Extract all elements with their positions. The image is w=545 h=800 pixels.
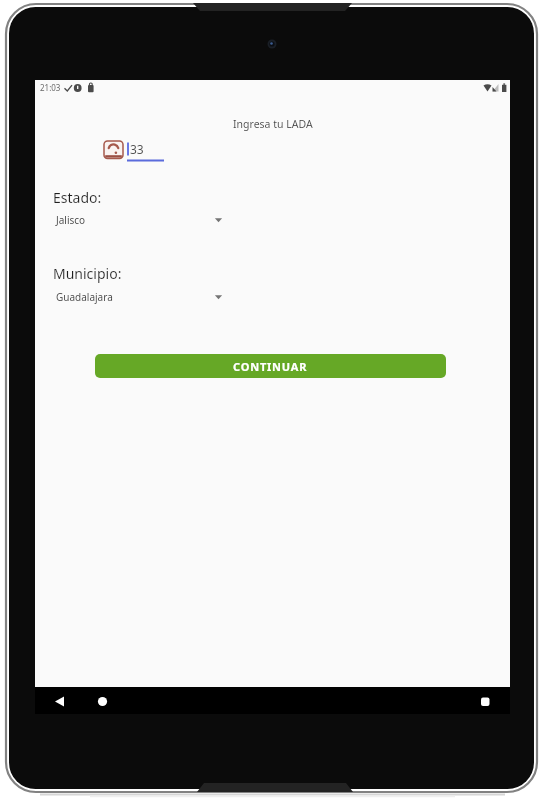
button[interactable]: [90, 692, 116, 710]
staticText: 21:03: [40, 82, 61, 93]
staticText: Jalisco: [56, 213, 86, 227]
staticText: Estado:: [53, 188, 102, 207]
staticText: Municipio:: [53, 264, 122, 283]
staticText: Guadalajara: [56, 290, 113, 304]
button[interactable]: [47, 692, 73, 710]
button[interactable]: [49, 285, 234, 305]
staticText: 33: [130, 141, 144, 157]
button[interactable]: CONTINUAR: [95, 354, 446, 378]
staticText: Ingresa tu LADA: [233, 117, 313, 131]
button[interactable]: [49, 208, 234, 228]
button[interactable]: [471, 692, 497, 710]
staticText: CONTINUAR: [233, 359, 308, 374]
